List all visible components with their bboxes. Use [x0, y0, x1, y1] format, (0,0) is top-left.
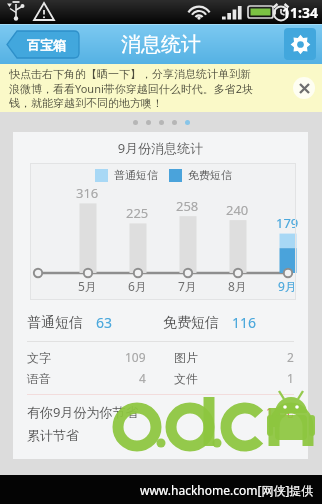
staticText: 6月 — [128, 278, 147, 294]
staticText: 13元 — [266, 403, 294, 421]
button[interactable]: 普通短信 — [27, 313, 294, 332]
staticText: 7月 — [178, 278, 197, 294]
staticText: 语音 — [27, 371, 51, 386]
staticText: 免费短信 — [188, 168, 232, 182]
button[interactable]: 设置 — [284, 28, 316, 60]
staticText: 消息统计 — [121, 32, 201, 57]
staticText: 快点击右下角的【晒一下】，分享消息统计单到新 — [9, 67, 251, 81]
staticText: 11:34 — [282, 3, 318, 22]
staticText: 258 — [176, 197, 199, 215]
staticText: 普通短信 — [27, 314, 83, 332]
staticText: 109 — [125, 349, 146, 365]
staticText: 免费短信 — [163, 314, 219, 332]
staticText: 225 — [126, 204, 149, 222]
staticText: 2 — [287, 349, 294, 365]
staticText: 图片 — [174, 350, 198, 365]
staticText: 116 — [232, 313, 257, 332]
staticText: www.hackhome.com[网侠]提供 — [140, 482, 314, 498]
staticText: 9月 — [278, 278, 297, 294]
staticText: 9月份消息统计 — [13, 139, 308, 157]
staticText: 文字 — [27, 350, 51, 365]
staticText: 8月 — [228, 278, 247, 294]
staticText: 累计节省 — [27, 427, 79, 443]
button[interactable]: 关闭提示 — [293, 77, 315, 99]
staticText: 4 — [139, 370, 146, 386]
staticText: 文件 — [174, 371, 198, 386]
staticText: 5月 — [78, 278, 97, 294]
staticText: 有你9月份为你节省 — [27, 403, 139, 421]
staticText: 百宝箱 — [27, 37, 66, 53]
button[interactable]: 返回 百宝箱 — [7, 31, 79, 58]
staticText: 普通短信 — [114, 168, 158, 182]
staticText: 钱，就能穿越到不同的地方噢！ — [9, 96, 163, 110]
staticText: 63 — [96, 313, 113, 332]
staticText: 浪微博，看看Youni带你穿越回什么时代。多省2块 — [9, 81, 254, 96]
staticText: 316 — [76, 184, 99, 202]
staticText: 1 — [287, 370, 294, 386]
staticText: 179 — [276, 214, 299, 232]
staticText: 240 — [226, 201, 249, 219]
